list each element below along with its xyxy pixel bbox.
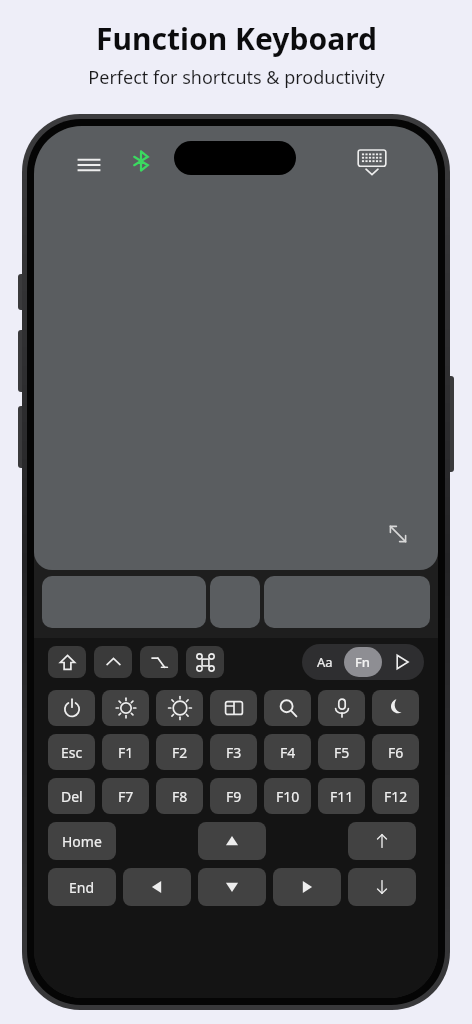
button[interactable]: Menu xyxy=(72,148,106,182)
button[interactable]: F8 xyxy=(156,778,203,814)
button[interactable]: alt xyxy=(140,646,178,678)
staticText: F2 xyxy=(172,743,188,762)
button[interactable]: F11 xyxy=(318,778,365,814)
button[interactable]: Right xyxy=(273,868,341,906)
staticText: F1 xyxy=(118,743,134,762)
button[interactable]: ctrl xyxy=(94,646,132,678)
other: Bluetooth connected xyxy=(126,146,156,176)
button[interactable]: Resize trackpad xyxy=(382,518,414,550)
staticText: Home xyxy=(62,832,102,851)
staticText: F7 xyxy=(118,787,134,806)
button[interactable]: Esc xyxy=(48,734,95,770)
staticText: Function Keyboard xyxy=(96,18,377,59)
staticText: F6 xyxy=(388,743,404,762)
button[interactable]: shift xyxy=(48,646,86,678)
staticText: F3 xyxy=(226,743,242,762)
button[interactable]: Middle click xyxy=(210,576,260,628)
button[interactable]: F5 xyxy=(318,734,365,770)
staticText: F11 xyxy=(330,787,354,806)
button[interactable]: Hide keyboard xyxy=(352,142,392,182)
button[interactable]: Page up xyxy=(348,822,416,860)
button[interactable]: F1 xyxy=(102,734,149,770)
button[interactable]: Menu xyxy=(34,126,438,570)
button[interactable]: Del xyxy=(48,778,95,814)
button[interactable]: Up xyxy=(198,822,266,860)
staticText: F5 xyxy=(334,743,350,762)
button[interactable]: Mission Control xyxy=(210,690,257,726)
button[interactable]: Home xyxy=(48,822,116,860)
button[interactable]: F10 xyxy=(264,778,311,814)
button[interactable]: F2 xyxy=(156,734,203,770)
button[interactable]: F12 xyxy=(372,778,419,814)
staticText: F12 xyxy=(384,787,408,806)
button[interactable]: Brightness up xyxy=(156,690,203,726)
button[interactable]: Down xyxy=(198,868,266,906)
button[interactable]: Power xyxy=(48,690,95,726)
button[interactable]: Left click xyxy=(42,576,206,628)
staticText: F9 xyxy=(226,787,242,806)
button[interactable]: Do not disturb xyxy=(372,690,419,726)
staticText: F8 xyxy=(172,787,188,806)
button[interactable]: Search xyxy=(264,690,311,726)
staticText: Fn xyxy=(355,653,371,671)
button[interactable]: F6 xyxy=(372,734,419,770)
staticText: F10 xyxy=(276,787,300,806)
button[interactable]: Page down xyxy=(348,868,416,906)
button[interactable]: F3 xyxy=(210,734,257,770)
button[interactable]: Brightness down xyxy=(102,690,149,726)
button[interactable]: Right click xyxy=(264,576,430,628)
staticText: Aa xyxy=(317,653,333,671)
button[interactable]: Fn xyxy=(344,647,382,677)
button[interactable]: Left xyxy=(123,868,191,906)
button[interactable]: F7 xyxy=(102,778,149,814)
staticText: Perfect for shortcuts & productivity xyxy=(88,65,385,90)
button[interactable]: Aa letters xyxy=(306,647,344,677)
button[interactable]: Media controls xyxy=(384,647,420,677)
button[interactable]: End xyxy=(48,868,116,906)
staticText: Esc xyxy=(61,743,83,762)
button[interactable]: F4 xyxy=(264,734,311,770)
staticText: F4 xyxy=(280,743,296,762)
button[interactable]: F9 xyxy=(210,778,257,814)
staticText: End xyxy=(69,878,95,897)
button[interactable]: cmd xyxy=(186,646,224,678)
button[interactable]: Dictation xyxy=(318,690,365,726)
staticText: Del xyxy=(61,787,83,806)
